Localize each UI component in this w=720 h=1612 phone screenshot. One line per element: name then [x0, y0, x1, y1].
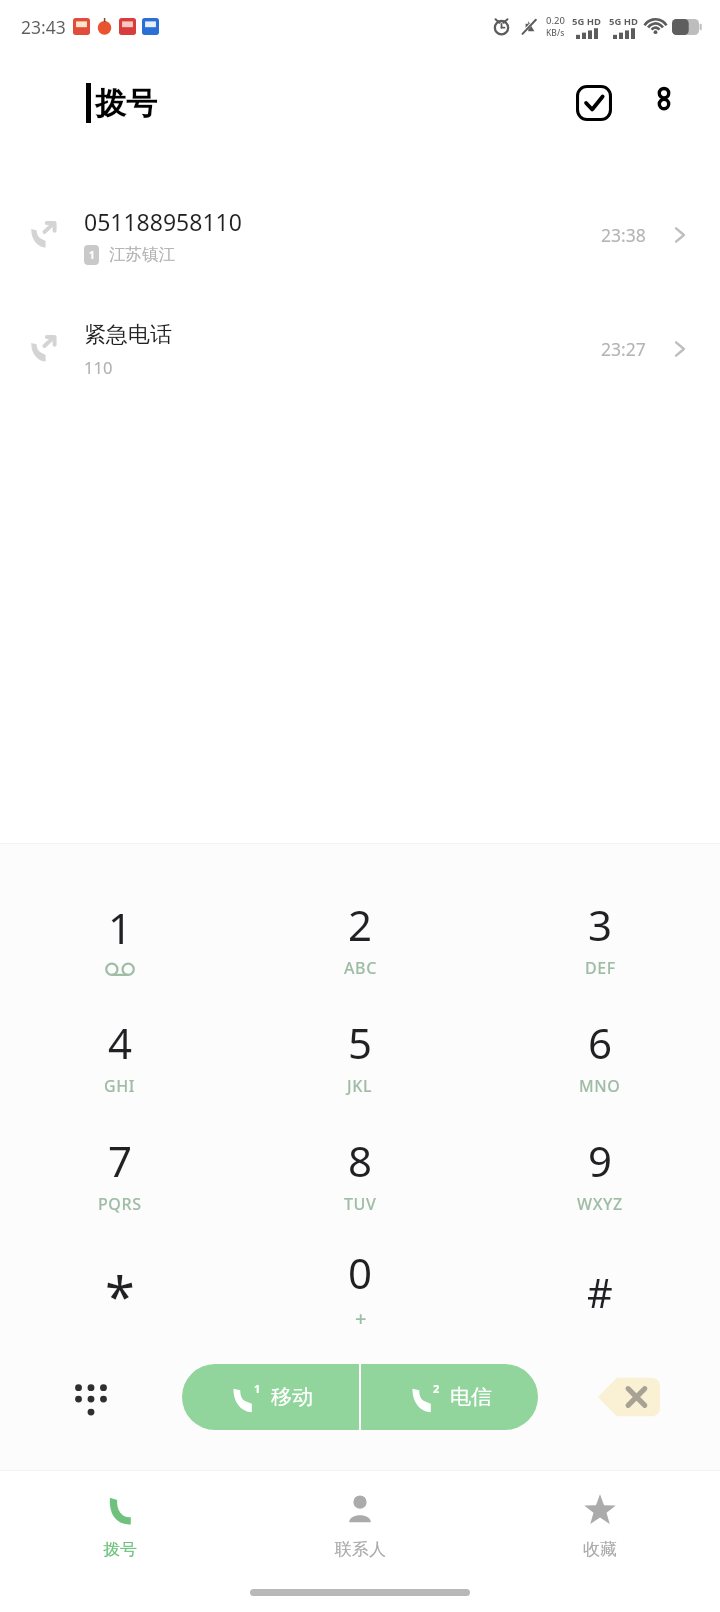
button[interactable]: Select calls	[568, 77, 620, 129]
staticText: *	[105, 1259, 135, 1333]
staticText: 110	[84, 356, 113, 378]
button[interactable]: #	[480, 1232, 720, 1344]
staticText: KB/s	[546, 27, 565, 39]
button[interactable]: 4	[0, 996, 240, 1114]
button[interactable]: 6	[480, 996, 720, 1114]
button[interactable]: 1	[182, 1364, 359, 1430]
staticText: 联系人	[335, 1539, 386, 1560]
staticText: 5G HD	[609, 15, 639, 28]
staticText: +	[355, 1305, 367, 1332]
staticText: 3	[588, 896, 613, 953]
staticText: 6	[588, 1014, 613, 1071]
staticText: 4	[108, 1014, 133, 1071]
staticText: 2	[433, 1381, 440, 1396]
staticText: #	[587, 1265, 613, 1319]
staticText: 9	[588, 1132, 613, 1189]
staticText: 0	[348, 1244, 373, 1301]
button[interactable]: Delete	[538, 1354, 720, 1440]
staticText: 7	[108, 1132, 133, 1189]
staticText: 移动	[271, 1384, 313, 1410]
button[interactable]: 联系人	[240, 1471, 480, 1581]
staticText: 拨号	[95, 84, 157, 123]
staticText: DEF	[585, 957, 616, 979]
staticText: 5G HD	[572, 15, 602, 28]
button[interactable]: 2	[240, 878, 480, 996]
staticText: 2	[348, 896, 373, 953]
button[interactable]: 拨号	[0, 1471, 240, 1581]
staticText: 5	[348, 1014, 373, 1071]
staticText: 电信	[450, 1384, 492, 1410]
button[interactable]: 9	[480, 1114, 720, 1232]
staticText: 拨号	[103, 1539, 137, 1560]
staticText: WXYZ	[577, 1193, 623, 1215]
button[interactable]: 3	[480, 878, 720, 996]
staticText: GHI	[104, 1075, 136, 1097]
button[interactable]: 紧急电话	[0, 307, 720, 391]
staticText: 051188958110	[84, 206, 242, 237]
staticText: 23:43	[21, 15, 66, 39]
staticText: 8	[348, 1132, 373, 1189]
button[interactable]: 051188958110	[0, 193, 720, 277]
button[interactable]: 收藏	[480, 1471, 720, 1581]
button[interactable]: *	[0, 1232, 240, 1344]
button[interactable]: More options	[638, 77, 690, 129]
button[interactable]: Hide dialpad	[0, 1354, 182, 1440]
staticText: ABC	[344, 957, 377, 979]
staticText: 1	[108, 899, 133, 956]
staticText: 1	[89, 248, 95, 262]
button[interactable]: 5	[240, 996, 480, 1114]
staticText: TUV	[344, 1193, 377, 1215]
button[interactable]: 1	[0, 878, 240, 996]
button[interactable]: 0	[240, 1232, 480, 1344]
staticText: PQRS	[98, 1193, 142, 1215]
staticText: 0.20	[546, 14, 565, 27]
staticText: 23:38	[601, 223, 646, 247]
staticText: 23:27	[601, 337, 646, 361]
button[interactable]: 7	[0, 1114, 240, 1232]
button[interactable]: 2	[361, 1364, 538, 1430]
staticText: 1	[254, 1381, 261, 1396]
staticText: 紧急电话	[84, 321, 172, 349]
staticText: 收藏	[583, 1539, 617, 1560]
staticText: JKL	[347, 1075, 373, 1097]
staticText: MNO	[579, 1075, 621, 1097]
button[interactable]: 8	[240, 1114, 480, 1232]
staticText: 江苏镇江	[109, 244, 175, 265]
